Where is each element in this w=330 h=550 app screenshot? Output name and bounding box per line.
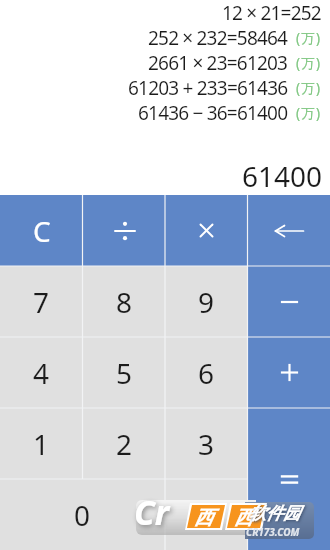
button[interactable]: 9 bbox=[165, 266, 248, 337]
button[interactable]: 6 bbox=[165, 337, 248, 408]
staticText: 3 bbox=[198, 425, 215, 463]
staticText: (万) bbox=[296, 104, 322, 122]
staticText: 4 bbox=[33, 354, 50, 392]
staticText: 8 bbox=[116, 283, 133, 321]
staticText: 0 bbox=[74, 496, 91, 534]
staticText: 西 bbox=[234, 506, 253, 530]
button[interactable] bbox=[248, 337, 330, 408]
staticText: 9 bbox=[198, 283, 215, 321]
staticText: 12 × 21=252 bbox=[222, 0, 321, 25]
button[interactable]: 2 bbox=[83, 408, 166, 479]
staticText: 6 bbox=[198, 354, 215, 392]
button[interactable]: 8 bbox=[83, 266, 166, 337]
button[interactable]: 1 bbox=[0, 408, 83, 479]
button[interactable] bbox=[248, 408, 330, 550]
button[interactable]: 0 bbox=[0, 479, 165, 550]
button[interactable]: C bbox=[0, 195, 83, 266]
staticText: 2 bbox=[116, 425, 133, 463]
staticText: (万) bbox=[296, 29, 322, 47]
staticText: (万) bbox=[296, 54, 322, 72]
staticText: 61400 bbox=[242, 157, 323, 195]
staticText: 2661 × 23=61203 bbox=[148, 50, 288, 75]
staticText: 1 bbox=[33, 425, 50, 463]
staticText: C bbox=[33, 212, 51, 250]
button[interactable]: 5 bbox=[83, 337, 166, 408]
button[interactable] bbox=[83, 195, 166, 266]
button[interactable] bbox=[165, 479, 248, 550]
button[interactable] bbox=[248, 195, 330, 266]
button[interactable] bbox=[248, 266, 330, 337]
button[interactable] bbox=[165, 195, 248, 266]
staticText: 61203 + 233=61436 bbox=[128, 75, 288, 100]
staticText: CR173.COM bbox=[246, 525, 300, 539]
button[interactable]: 4 bbox=[0, 337, 83, 408]
staticText: 5 bbox=[116, 354, 133, 392]
staticText: 61436 − 36=61400 bbox=[138, 100, 288, 125]
button[interactable]: 7 bbox=[0, 266, 83, 337]
staticText: (万) bbox=[296, 79, 322, 97]
staticText: 252 × 232=58464 bbox=[148, 25, 288, 50]
staticText: 7 bbox=[33, 283, 50, 321]
button[interactable]: 3 bbox=[165, 408, 248, 479]
staticText: 西 bbox=[194, 506, 213, 530]
staticText: 软件园 bbox=[249, 503, 300, 524]
staticText: Cr bbox=[134, 489, 170, 535]
